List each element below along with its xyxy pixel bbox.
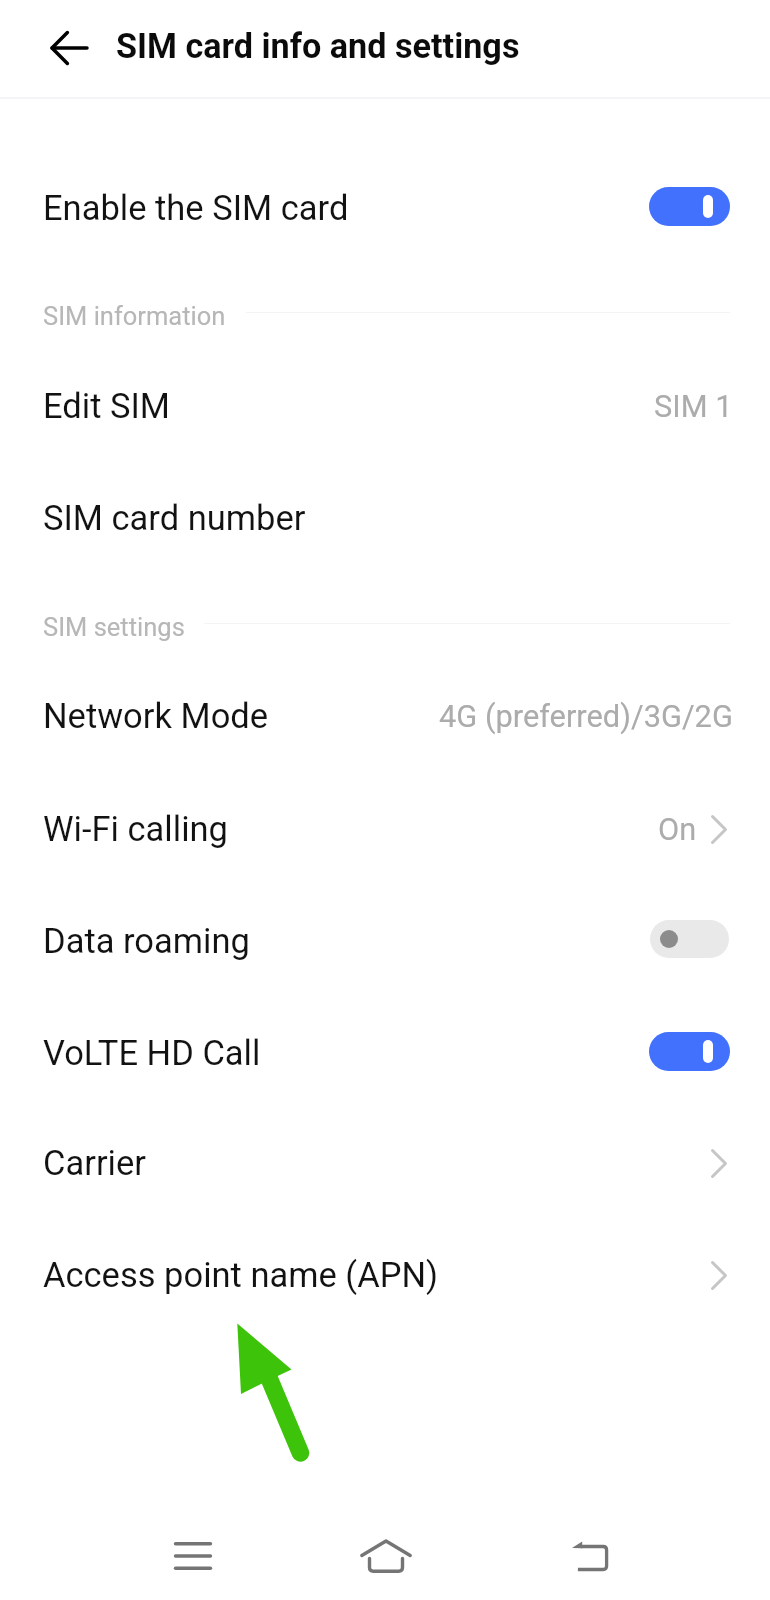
staticText: On [658, 811, 697, 847]
staticText: SIM card number [43, 498, 306, 538]
button[interactable]: Carrier [0, 1117, 770, 1209]
button[interactable]: Back [41, 20, 97, 76]
staticText: Edit SIM [43, 386, 170, 426]
staticText: Carrier [43, 1143, 146, 1183]
button[interactable]: Network Mode [0, 670, 770, 762]
button[interactable]: Enable the SIM card [0, 162, 770, 254]
button[interactable]: Back [534, 1500, 644, 1600]
button[interactable]: Access point name (APN) [0, 1229, 770, 1321]
button[interactable]: VoLTE HD Call [0, 1007, 770, 1099]
staticText: SIM 1 [654, 388, 733, 424]
staticText: Network Mode [43, 696, 269, 736]
button[interactable]: Edit SIM [0, 360, 770, 452]
staticText: SIM information [43, 301, 226, 331]
staticText: Wi-Fi calling [43, 809, 228, 849]
button[interactable]: Home [331, 1501, 441, 1600]
staticText: VoLTE HD Call [43, 1033, 261, 1073]
staticText: 4G (preferred)/3G/2G [439, 698, 733, 734]
staticText: SIM settings [43, 612, 185, 642]
button[interactable]: Data roaming [0, 895, 770, 987]
staticText: Enable the SIM card [43, 188, 349, 228]
staticText: SIM card info and settings [116, 26, 520, 66]
button[interactable]: Wi-Fi calling [0, 783, 770, 875]
button[interactable]: SIM card number [0, 472, 770, 564]
staticText: Data roaming [43, 921, 250, 961]
staticText: Access point name (APN) [43, 1255, 439, 1295]
button[interactable]: Recent apps [138, 1501, 248, 1600]
